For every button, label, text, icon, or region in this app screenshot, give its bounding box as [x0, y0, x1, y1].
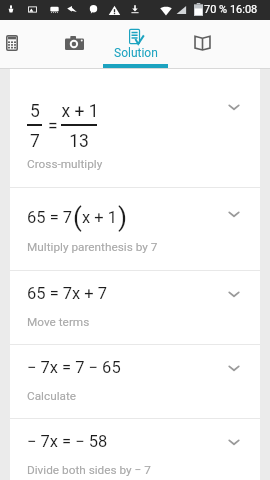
staticText: Solution	[114, 46, 158, 60]
button[interactable]: 65 = 7x + 7	[10, 271, 260, 344]
staticText: Cross-multiply	[27, 157, 103, 171]
button[interactable]: 65 = 7	[10, 188, 260, 270]
staticText: 7	[30, 131, 40, 152]
staticText: 70 % 16:08	[204, 3, 258, 16]
button[interactable]: − 7x = − 58	[10, 419, 260, 480]
staticText: x + 1	[82, 208, 118, 227]
button[interactable]: 5	[10, 69, 260, 187]
staticText: 65 = 7	[27, 208, 73, 227]
staticText: − 7x = 7 − 65	[27, 358, 121, 377]
staticText: (	[73, 202, 82, 232]
staticText: Divide both sides by − 7	[27, 463, 151, 477]
staticText: =	[48, 116, 58, 137]
staticText: Calculate	[27, 389, 77, 403]
button[interactable]: Calculator	[0, 20, 38, 68]
staticText: 13	[69, 131, 89, 152]
staticText: − 7x = − 58	[27, 432, 108, 451]
button[interactable]: Camera	[48, 20, 100, 68]
button[interactable]: − 7x = 7 − 65	[10, 345, 260, 418]
staticText: 65 = 7x + 7	[27, 284, 108, 303]
staticText: x + 1	[61, 101, 97, 122]
button[interactable]: Glossary	[176, 20, 228, 68]
staticText: Move terms	[27, 315, 90, 329]
button[interactable]: Solution	[103, 20, 169, 68]
staticText: Multiply parenthesis by 7	[27, 240, 158, 254]
staticText: )	[118, 202, 128, 232]
staticText: 5	[30, 101, 40, 122]
